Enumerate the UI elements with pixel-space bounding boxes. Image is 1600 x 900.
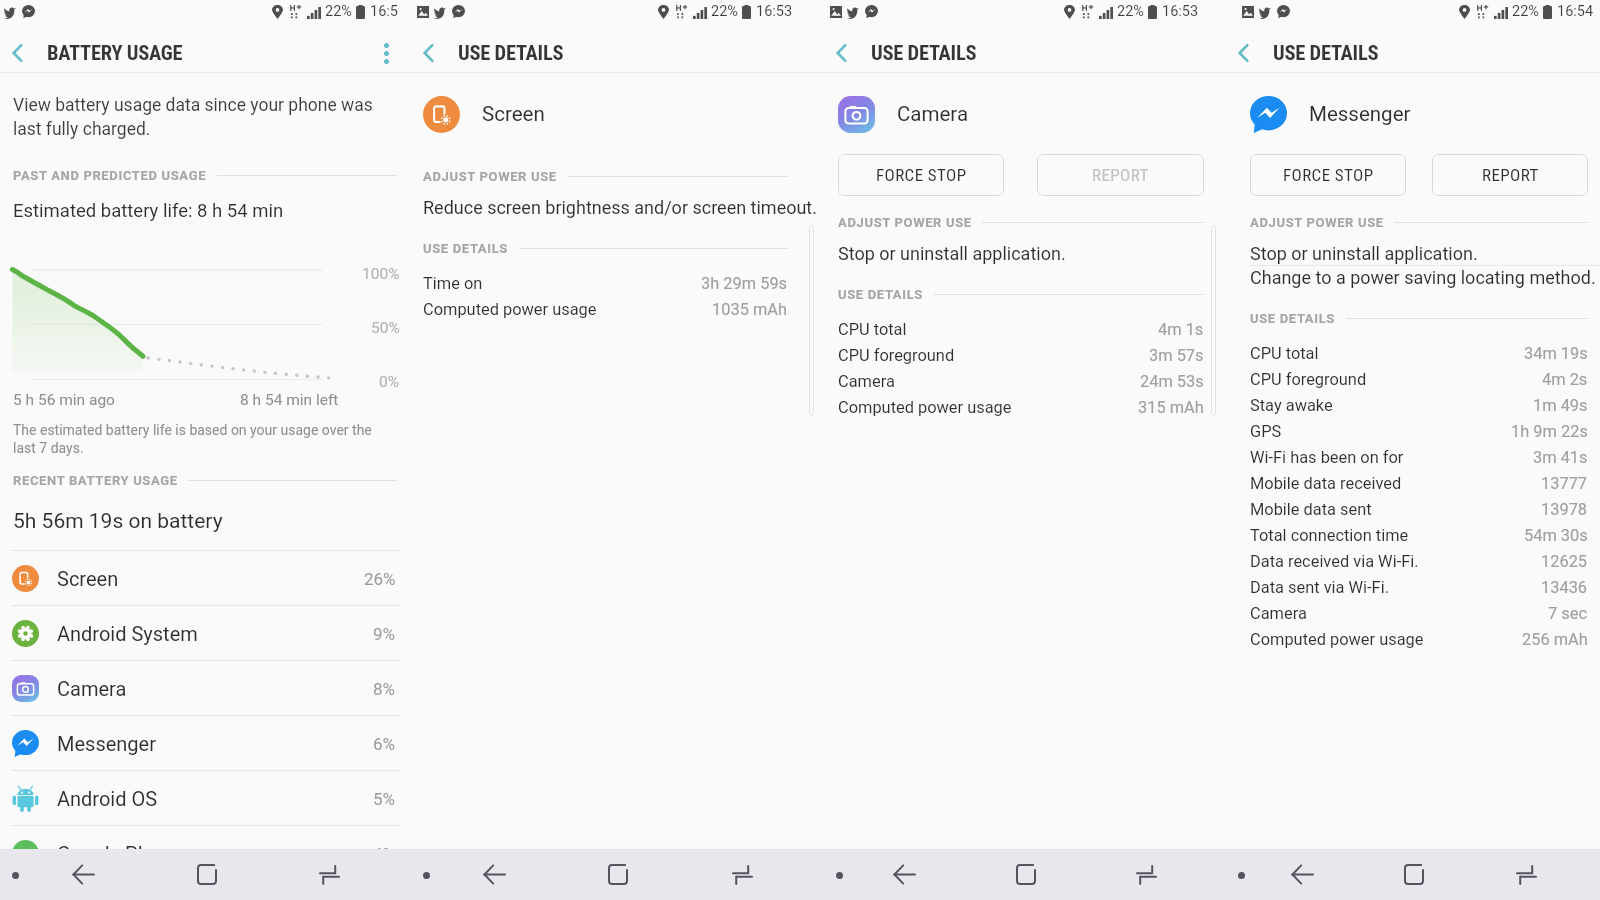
staticText: FORCE STOP bbox=[876, 165, 967, 185]
staticText: Camera bbox=[838, 372, 1140, 391]
staticText: 1m 49s bbox=[1533, 396, 1588, 415]
staticText: Camera bbox=[1250, 604, 1548, 623]
staticText: Stay awake bbox=[1250, 396, 1533, 415]
staticText: Data received via Wi-Fi. bbox=[1250, 552, 1541, 571]
staticText: 8 h 54 min left bbox=[240, 391, 339, 409]
button[interactable]: Android OS bbox=[0, 771, 411, 826]
staticText: Android System bbox=[57, 622, 373, 645]
button[interactable]: FORCE STOP bbox=[838, 154, 1004, 196]
staticText: REPORT bbox=[1482, 165, 1539, 185]
staticText: Camera bbox=[57, 677, 373, 700]
staticText: Computed power usage bbox=[1250, 630, 1522, 649]
staticText: 4m 1s bbox=[1158, 320, 1204, 339]
button[interactable]: REPORT bbox=[1432, 154, 1588, 196]
button[interactable]: Messenger bbox=[0, 716, 411, 771]
staticText: 4% bbox=[373, 844, 396, 864]
staticText: 315 mAh bbox=[1138, 398, 1204, 417]
staticText: 4m 2s bbox=[1542, 370, 1588, 389]
button[interactable]: Recent apps bbox=[268, 849, 391, 900]
staticText: Stop or uninstall application. bbox=[838, 243, 1066, 264]
staticText: 50% bbox=[371, 319, 400, 337]
staticText: Messenger bbox=[1309, 102, 1411, 126]
staticText: Change to a power saving locating method… bbox=[1250, 267, 1596, 288]
button[interactable]: Screen bbox=[0, 551, 411, 606]
staticText: ADJUST POWER USE bbox=[423, 169, 557, 184]
button[interactable]: Camera bbox=[0, 661, 411, 716]
staticText: 100% bbox=[362, 265, 400, 283]
button[interactable]: Recent apps bbox=[680, 849, 804, 900]
staticText: Computed power usage bbox=[423, 300, 712, 319]
button[interactable]: FORCE STOP bbox=[1250, 154, 1406, 196]
staticText: 22% bbox=[325, 3, 352, 20]
button[interactable]: Navigate up bbox=[0, 36, 34, 70]
staticText: Messenger bbox=[57, 732, 373, 755]
button[interactable]: Home bbox=[145, 849, 268, 900]
button[interactable]: REPORT bbox=[1037, 154, 1204, 196]
button[interactable]: More options bbox=[369, 36, 403, 70]
staticText: 22% bbox=[711, 3, 738, 20]
button[interactable]: Show menu bbox=[1229, 863, 1253, 887]
button[interactable]: Navigate up bbox=[824, 36, 858, 70]
staticText: Camera bbox=[897, 102, 969, 126]
button[interactable]: Google Play bbox=[0, 826, 411, 881]
staticText: GPS bbox=[1250, 422, 1511, 441]
staticText: 16:53 bbox=[1162, 3, 1199, 20]
staticText: 34m 19s bbox=[1524, 344, 1588, 363]
staticText: FORCE STOP bbox=[1283, 165, 1374, 185]
staticText: 13436 bbox=[1541, 578, 1588, 597]
button[interactable]: Navigate up bbox=[411, 36, 445, 70]
staticText: Reduce screen brightness and/or screen t… bbox=[423, 197, 818, 218]
staticText: 54m 30s bbox=[1524, 526, 1588, 545]
staticText: 22% bbox=[1117, 3, 1144, 20]
button[interactable]: Back bbox=[22, 849, 145, 900]
staticText: Screen bbox=[57, 567, 364, 590]
button[interactable]: Recent apps bbox=[1086, 849, 1207, 900]
staticText: Mobile data received bbox=[1250, 474, 1541, 493]
staticText: USE DETAILS bbox=[458, 41, 564, 65]
staticText: Total connection time bbox=[1250, 526, 1524, 545]
staticText: Time on bbox=[423, 274, 701, 293]
staticText: Wi-Fi has been on for bbox=[1250, 448, 1533, 467]
button[interactable]: Back bbox=[1246, 849, 1358, 900]
staticText: RECENT BATTERY USAGE bbox=[13, 473, 178, 488]
button[interactable]: Navigate up bbox=[1226, 36, 1260, 70]
staticText: 3m 57s bbox=[1149, 346, 1204, 365]
button[interactable]: Back bbox=[844, 849, 965, 900]
staticText: USE DETAILS bbox=[1250, 311, 1336, 326]
staticText: USE DETAILS bbox=[423, 241, 509, 256]
staticText: 16:5 bbox=[370, 3, 398, 20]
button[interactable]: Home bbox=[556, 849, 680, 900]
staticText: 24m 53s bbox=[1140, 372, 1204, 391]
staticText: ADJUST POWER USE bbox=[1250, 215, 1384, 230]
staticText: Android OS bbox=[57, 787, 373, 810]
staticText: 0% bbox=[379, 373, 400, 391]
staticText: Estimated battery life: 8 h 54 min bbox=[13, 200, 284, 222]
button[interactable]: Recent apps bbox=[1470, 849, 1582, 900]
button[interactable]: Show menu bbox=[3, 863, 27, 887]
staticText: 3h 29m 59s bbox=[701, 274, 788, 293]
button[interactable]: Show menu bbox=[414, 863, 438, 887]
button[interactable]: Android System bbox=[0, 606, 411, 661]
staticText: USE DETAILS bbox=[1273, 41, 1379, 65]
staticText: 26% bbox=[364, 569, 396, 589]
staticText: USE DETAILS bbox=[871, 41, 977, 65]
button[interactable]: Home bbox=[965, 849, 1086, 900]
staticText: 256 mAh bbox=[1522, 630, 1588, 649]
staticText: 5h 56m 19s on battery bbox=[13, 509, 223, 534]
staticText: CPU foreground bbox=[838, 346, 1149, 365]
staticText: USE DETAILS bbox=[838, 287, 924, 302]
staticText: 8% bbox=[373, 679, 396, 699]
staticText: 5 h 56 min ago bbox=[13, 391, 115, 409]
staticText: 1035 mAh bbox=[712, 300, 788, 319]
staticText: 16:53 bbox=[756, 3, 793, 20]
staticText: 13777 bbox=[1541, 474, 1588, 493]
staticText: Screen bbox=[482, 102, 545, 126]
staticText: Mobile data sent bbox=[1250, 500, 1541, 519]
staticText: 12625 bbox=[1541, 552, 1588, 571]
staticText: 22% bbox=[1512, 3, 1539, 20]
button[interactable]: Back bbox=[432, 849, 556, 900]
button[interactable]: Home bbox=[1358, 849, 1470, 900]
button[interactable]: Show menu bbox=[827, 863, 851, 887]
staticText: Stop or uninstall application. bbox=[1250, 243, 1478, 264]
staticText: ADJUST POWER USE bbox=[838, 215, 972, 230]
